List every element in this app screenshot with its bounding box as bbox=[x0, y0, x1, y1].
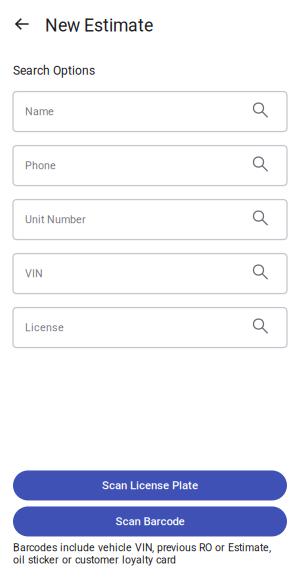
staticText: Scan Barcode bbox=[115, 515, 184, 528]
button[interactable]: License bbox=[13, 308, 287, 348]
button[interactable]: VIN bbox=[13, 254, 287, 294]
staticText: Scan License Plate bbox=[102, 479, 198, 492]
button[interactable]: Unit Number bbox=[13, 200, 287, 240]
button[interactable]: Back bbox=[7, 7, 37, 43]
staticText: VIN bbox=[25, 267, 43, 280]
staticText: Unit Number bbox=[25, 213, 86, 226]
button[interactable]: Name bbox=[13, 92, 287, 132]
staticText: Phone bbox=[25, 159, 56, 172]
staticText: Name bbox=[25, 105, 54, 118]
button[interactable]: Phone bbox=[13, 146, 287, 186]
staticText: Search Options bbox=[13, 63, 95, 78]
staticText: New Estimate bbox=[45, 15, 153, 36]
staticText: License bbox=[25, 321, 64, 334]
button[interactable]: Scan Barcode bbox=[13, 506, 287, 536]
button[interactable]: Scan License Plate bbox=[13, 470, 287, 500]
staticText: Barcodes include vehicle VIN, previous R… bbox=[13, 541, 271, 566]
